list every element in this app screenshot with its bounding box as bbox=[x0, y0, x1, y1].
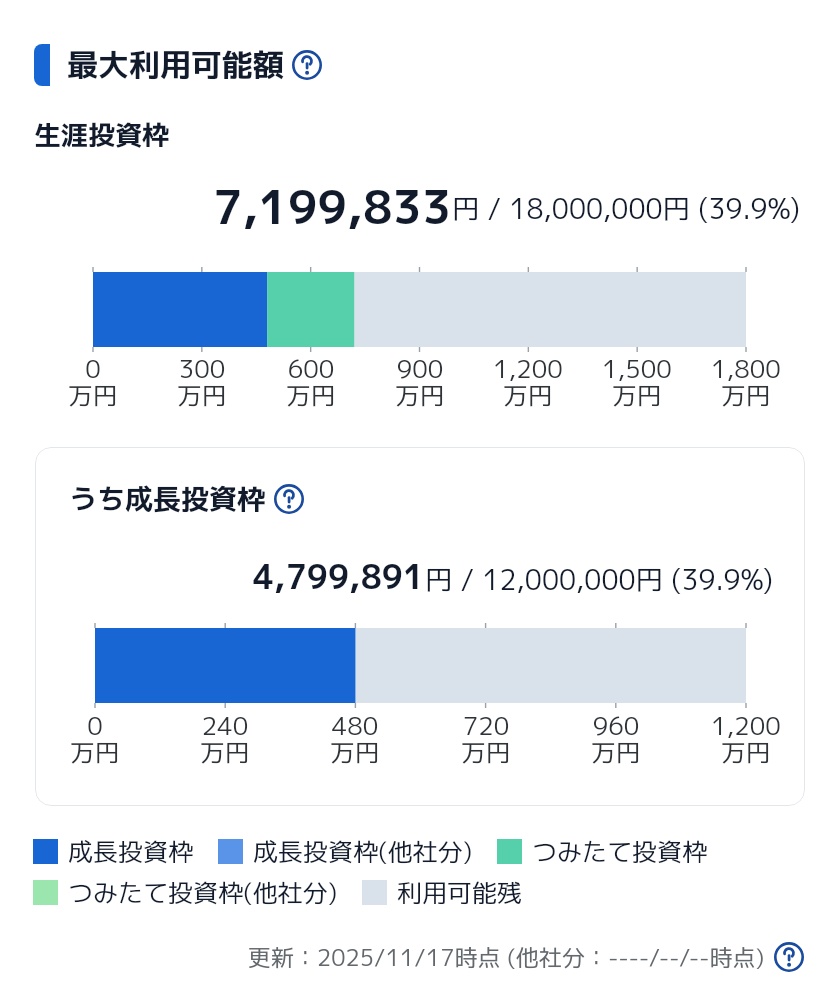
staticText: 1,500 bbox=[577, 351, 697, 386]
staticText: 万円 bbox=[468, 378, 588, 413]
staticText: 0 bbox=[35, 708, 155, 743]
staticText: 万円 bbox=[35, 735, 155, 770]
button[interactable]: 成長投資枠(他社分) bbox=[218, 834, 473, 869]
staticText: 1,800 bbox=[686, 351, 806, 386]
staticText: 4,799,891 bbox=[253, 554, 425, 600]
staticText: 960 bbox=[556, 708, 676, 743]
staticText: 300 bbox=[142, 351, 262, 386]
staticText: 万円 bbox=[295, 735, 415, 770]
staticText: 円 / 12,000,000円 (39.9%) bbox=[425, 560, 774, 598]
staticText: 1,200 bbox=[468, 351, 588, 386]
staticText: 万円 bbox=[360, 378, 480, 413]
staticText: 万円 bbox=[686, 735, 805, 770]
staticText: 600 bbox=[251, 351, 371, 386]
staticText: 最大利用可能額 bbox=[67, 43, 284, 86]
button[interactable]: 利用可能残 bbox=[362, 875, 523, 910]
staticText: 万円 bbox=[165, 735, 285, 770]
staticText: つみたて投資枠(他社分) bbox=[68, 875, 338, 910]
staticText: 1,200 bbox=[686, 708, 805, 743]
staticText: 更新：2025/11/17時点 (他社分：----/--/--時点) bbox=[248, 941, 765, 973]
button[interactable]: つみたて投資枠 bbox=[497, 834, 708, 869]
staticText: 万円 bbox=[142, 378, 262, 413]
staticText: 480 bbox=[295, 708, 415, 743]
staticText: 7,199,833 bbox=[213, 175, 452, 239]
staticText: 720 bbox=[426, 708, 546, 743]
staticText: 万円 bbox=[33, 378, 153, 413]
button[interactable]: うち成長投資枠のヘルプ bbox=[274, 484, 304, 514]
button[interactable]: 更新日時のヘルプ bbox=[774, 942, 804, 972]
staticText: 万円 bbox=[686, 378, 806, 413]
staticText: 成長投資枠 bbox=[68, 834, 194, 869]
staticText: 生涯投資枠 bbox=[34, 116, 169, 154]
staticText: 900 bbox=[360, 351, 480, 386]
staticText: 成長投資枠(他社分) bbox=[253, 834, 473, 869]
staticText: 万円 bbox=[426, 735, 546, 770]
button[interactable]: つみたて投資枠(他社分) bbox=[33, 875, 338, 910]
staticText: 円 / 18,000,000円 (39.9%) bbox=[452, 189, 801, 227]
staticText: 0 bbox=[33, 351, 153, 386]
staticText: 万円 bbox=[251, 378, 371, 413]
staticText: 利用可能残 bbox=[397, 875, 523, 910]
staticText: うち成長投資枠 bbox=[69, 479, 266, 518]
button[interactable]: 最大利用可能額のヘルプ bbox=[292, 50, 322, 80]
staticText: 万円 bbox=[556, 735, 676, 770]
staticText: 万円 bbox=[577, 378, 697, 413]
button[interactable]: 成長投資枠 bbox=[33, 834, 194, 869]
staticText: つみたて投資枠 bbox=[532, 834, 708, 869]
staticText: 240 bbox=[165, 708, 285, 743]
